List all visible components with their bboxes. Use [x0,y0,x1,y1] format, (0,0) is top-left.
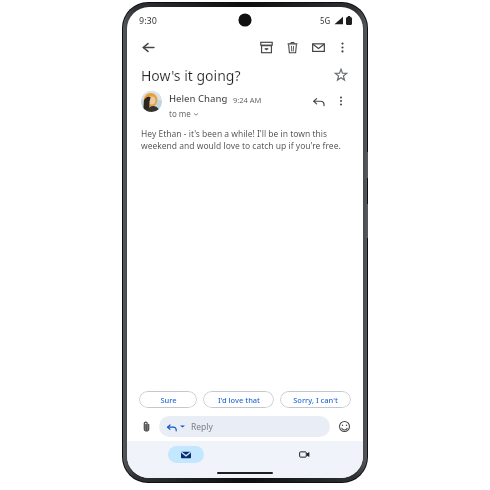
staticText: I'd love that [218,395,260,405]
staticText: 9:24 AM [233,95,262,105]
button[interactable]: Reply [159,416,330,437]
button[interactable]: More options [331,36,353,58]
staticText: to me [169,108,191,119]
staticText: How's it going? [141,66,331,85]
staticText: Reply [191,421,213,433]
button[interactable]: Sure [139,391,197,408]
button[interactable]: Sorry, I can't [280,391,351,408]
button[interactable]: Insert emoji [335,417,353,435]
button[interactable]: I'd love that [203,391,274,408]
button[interactable]: Archive [255,36,277,58]
button[interactable]: More options [331,91,351,111]
button[interactable]: Back [137,36,159,58]
button[interactable]: Mail [168,446,204,463]
button[interactable]: Attach file [137,417,155,435]
staticText: Helen Chang [169,92,228,105]
button[interactable]: Star [331,65,351,85]
button[interactable]: Delete [281,36,303,58]
button[interactable]: Mark unread [307,36,329,58]
staticText: Hey Ethan - it's been a while! I'll be i… [141,128,327,140]
staticText: 9:30 [139,14,157,26]
button[interactable]: Reply [309,91,329,111]
staticText: Sorry, I can't [293,395,338,405]
button[interactable]: Meet [286,446,322,463]
staticText: weekend and would love to catch up if yo… [141,140,341,152]
staticText: Sure [160,395,177,405]
staticText: 5G [320,15,331,26]
